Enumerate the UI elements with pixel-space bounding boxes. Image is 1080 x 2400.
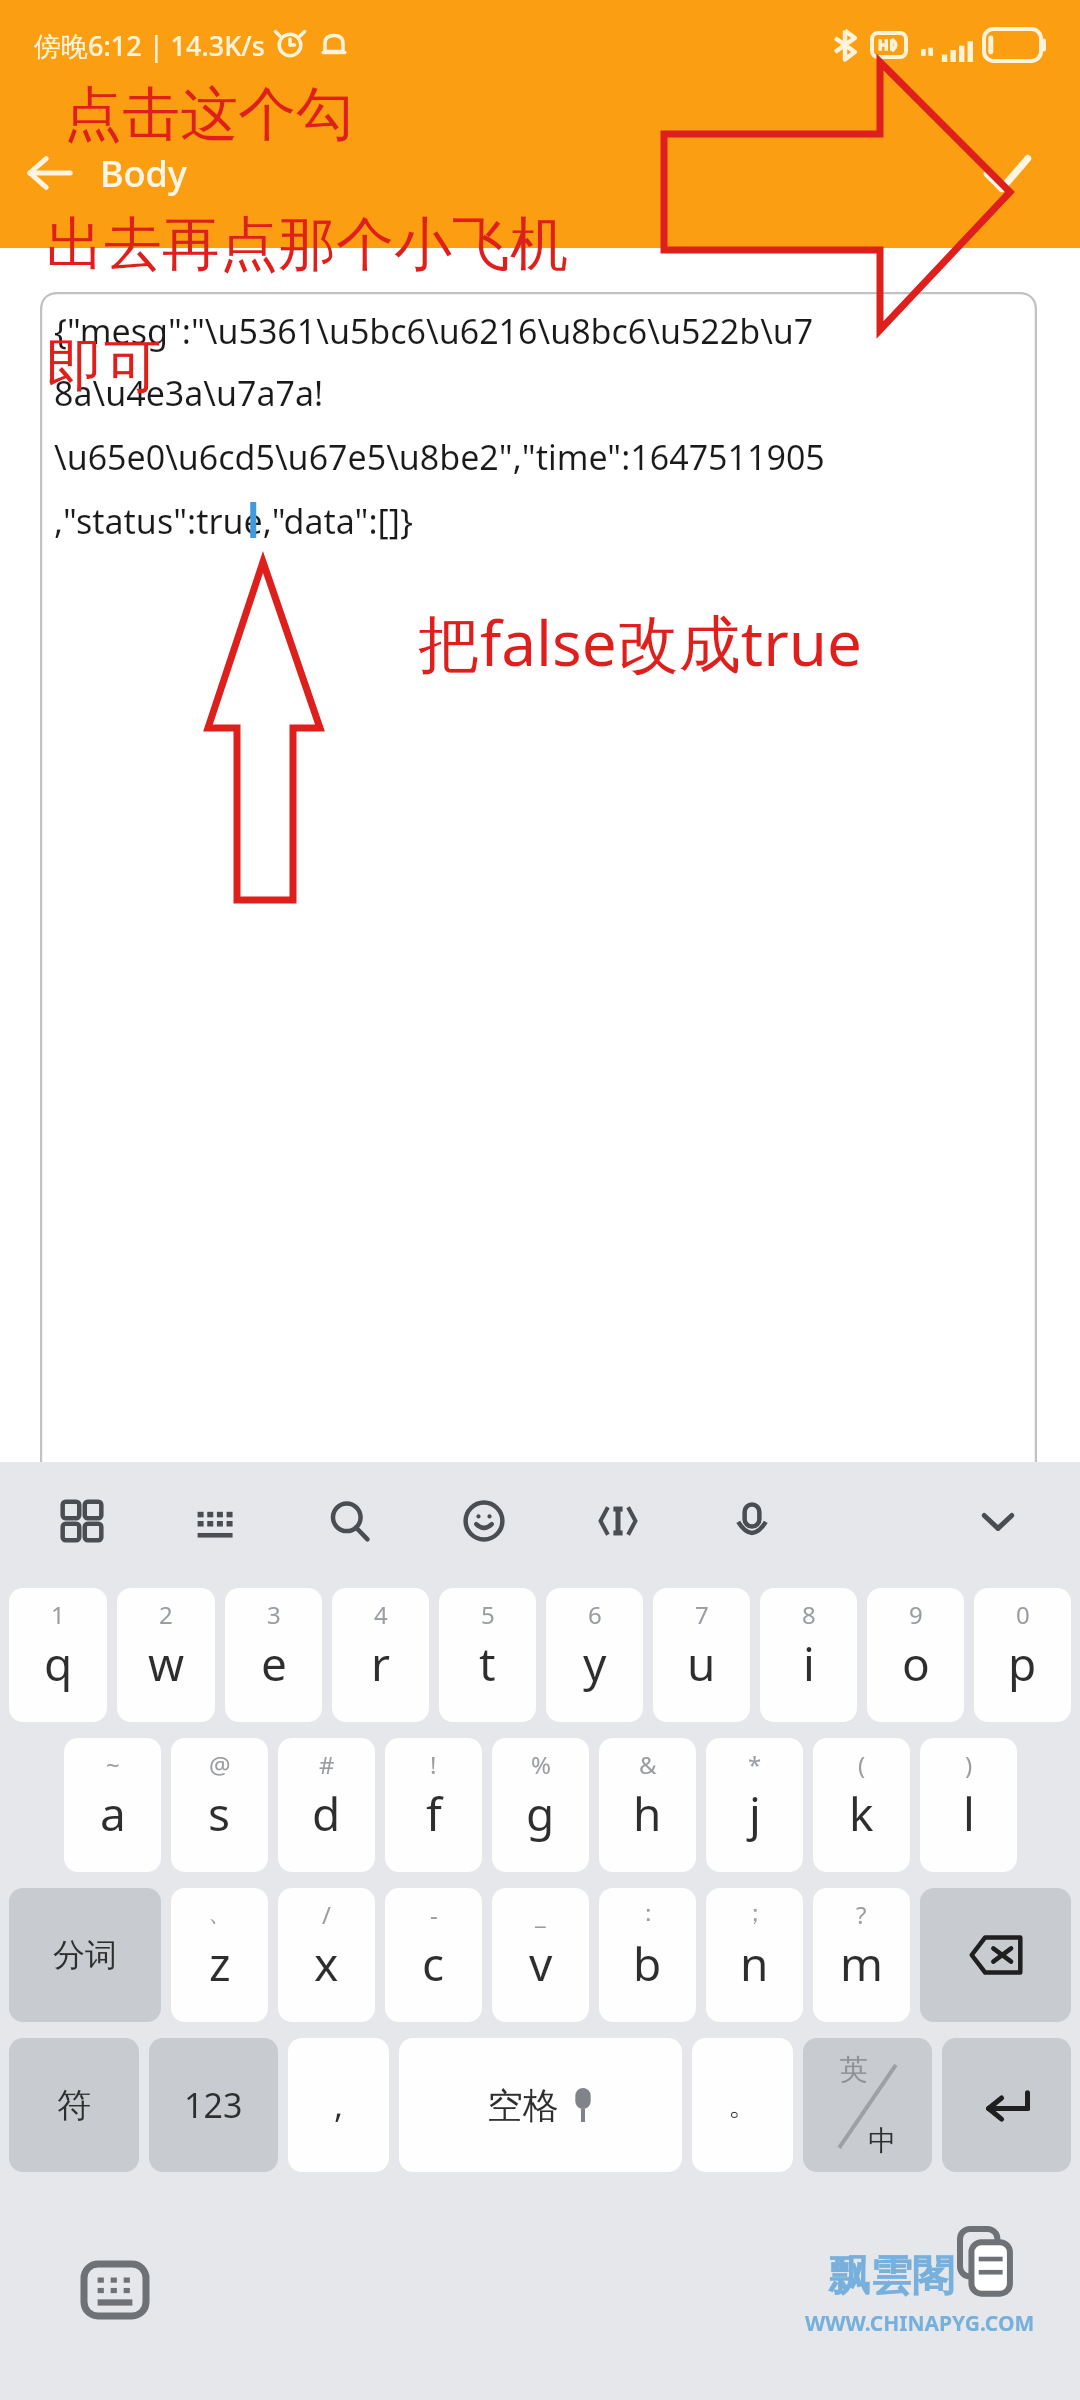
staticText: m <box>840 1932 884 1995</box>
button[interactable]: ~ <box>64 1738 161 1872</box>
button[interactable]: Confirm <box>952 118 1062 228</box>
button[interactable]: ? <box>813 1888 910 2022</box>
staticText: 6 <box>588 1598 602 1631</box>
button[interactable]: 7 <box>653 1588 750 1722</box>
staticText: 5 <box>481 1598 495 1631</box>
button[interactable]: 。 <box>692 2038 793 2172</box>
staticText: w <box>148 1632 185 1695</box>
staticText: l <box>963 1782 975 1845</box>
staticText: / <box>322 1898 331 1931</box>
button[interactable]: 5 <box>439 1588 536 1722</box>
staticText: ： <box>636 1898 660 1928</box>
button[interactable]: Back <box>0 123 100 223</box>
staticText: # <box>319 1748 335 1781</box>
button[interactable]: 空格 <box>399 2038 682 2172</box>
staticText: g <box>526 1782 555 1845</box>
button[interactable]: 2 <box>117 1588 215 1722</box>
staticText: b <box>633 1932 662 1995</box>
staticText: ( <box>858 1748 866 1781</box>
staticText: 空格 <box>487 2083 559 2128</box>
button[interactable]: Voice input <box>716 1485 788 1557</box>
staticText: , <box>334 2082 344 2128</box>
staticText: ,"status":true,"data":[]} <box>54 498 413 544</box>
button[interactable]: 123 <box>149 2038 278 2172</box>
button[interactable]: 分词 <box>9 1888 161 2022</box>
button[interactable]: 、 <box>171 1888 268 2022</box>
staticText: @ <box>209 1748 231 1781</box>
staticText: 分词 <box>53 1935 117 1975</box>
button[interactable]: 9 <box>867 1588 964 1722</box>
staticText: e <box>261 1632 287 1695</box>
button[interactable]: Edit text <box>582 1485 654 1557</box>
staticText: k <box>849 1782 874 1845</box>
button[interactable]: 1 <box>9 1588 107 1722</box>
button[interactable]: Search <box>314 1485 386 1557</box>
staticText: * <box>748 1748 762 1781</box>
button[interactable]: Apps <box>46 1485 118 1557</box>
staticText: 8 <box>802 1598 816 1631</box>
button[interactable]: Switch language <box>803 2038 932 2172</box>
staticText: 0 <box>1016 1598 1030 1631</box>
button[interactable]: @ <box>171 1738 268 1872</box>
button[interactable]: - <box>385 1888 482 2022</box>
staticText: 3 <box>267 1598 281 1631</box>
staticText: q <box>44 1632 73 1695</box>
staticText: 。 <box>728 2086 758 2124</box>
staticText: _ <box>535 1898 546 1931</box>
button[interactable]: Enter <box>942 2038 1071 2172</box>
staticText: 1 <box>51 1598 65 1631</box>
staticText: s <box>208 1782 231 1845</box>
button[interactable]: 6 <box>546 1588 643 1722</box>
staticText: ! <box>430 1748 437 1781</box>
button[interactable]: Backspace <box>920 1888 1071 2022</box>
staticText: 7 <box>695 1598 709 1631</box>
button[interactable]: Hide keyboard <box>962 1485 1034 1557</box>
staticText: a <box>100 1782 126 1845</box>
staticText: WWW.CHINAPYG.COM <box>805 2309 1035 2338</box>
button[interactable]: # <box>278 1738 375 1872</box>
staticText: 2 <box>159 1598 173 1631</box>
staticText: h <box>633 1782 662 1845</box>
staticText: j <box>749 1782 761 1845</box>
button[interactable]: / <box>278 1888 375 2022</box>
staticText: u <box>687 1632 716 1695</box>
button[interactable]: Switch keyboard <box>76 2251 154 2329</box>
button[interactable]: , <box>288 2038 389 2172</box>
button[interactable]: 8 <box>760 1588 857 1722</box>
staticText: v <box>529 1932 553 1995</box>
staticText: 傍晚6:12 | 14.3K/s <box>34 27 265 64</box>
button[interactable]: 符 <box>9 2038 139 2172</box>
button[interactable]: Emoji <box>448 1485 520 1557</box>
button[interactable]: _ <box>492 1888 589 2022</box>
button[interactable]: Keyboard layout <box>180 1485 252 1557</box>
staticText: y <box>583 1632 607 1695</box>
staticText: 9 <box>909 1598 923 1631</box>
staticText: i <box>803 1632 815 1695</box>
button[interactable]: 4 <box>332 1588 429 1722</box>
button[interactable]: {"mesg":"\u5361\u5bc6\u6216\u8bc6\u522b\… <box>40 292 1037 1462</box>
button[interactable]: * <box>706 1738 803 1872</box>
staticText: 123 <box>184 2082 243 2128</box>
button[interactable]: 0 <box>974 1588 1071 1722</box>
button[interactable]: ! <box>385 1738 482 1872</box>
staticText: o <box>902 1632 930 1695</box>
staticText: & <box>639 1748 657 1781</box>
staticText: 中 <box>868 2123 896 2158</box>
staticText: ； <box>743 1898 767 1928</box>
staticText: 4 <box>374 1598 388 1631</box>
button[interactable]: ： <box>599 1888 696 2022</box>
staticText: c <box>422 1932 445 1995</box>
button[interactable]: ) <box>920 1738 1017 1872</box>
button[interactable]: & <box>599 1738 696 1872</box>
button[interactable]: 3 <box>225 1588 322 1722</box>
staticText: % <box>531 1748 551 1781</box>
staticText: 即可 <box>46 330 162 403</box>
button[interactable]: % <box>492 1738 589 1872</box>
staticText: 飘雲閣 <box>828 2250 954 2303</box>
staticText: 把false改成true <box>418 600 863 685</box>
button[interactable]: ( <box>813 1738 910 1872</box>
staticText: 英 <box>840 2052 868 2087</box>
staticText: 、 <box>208 1898 232 1928</box>
staticText: ) <box>965 1748 973 1781</box>
button[interactable]: ； <box>706 1888 803 2022</box>
